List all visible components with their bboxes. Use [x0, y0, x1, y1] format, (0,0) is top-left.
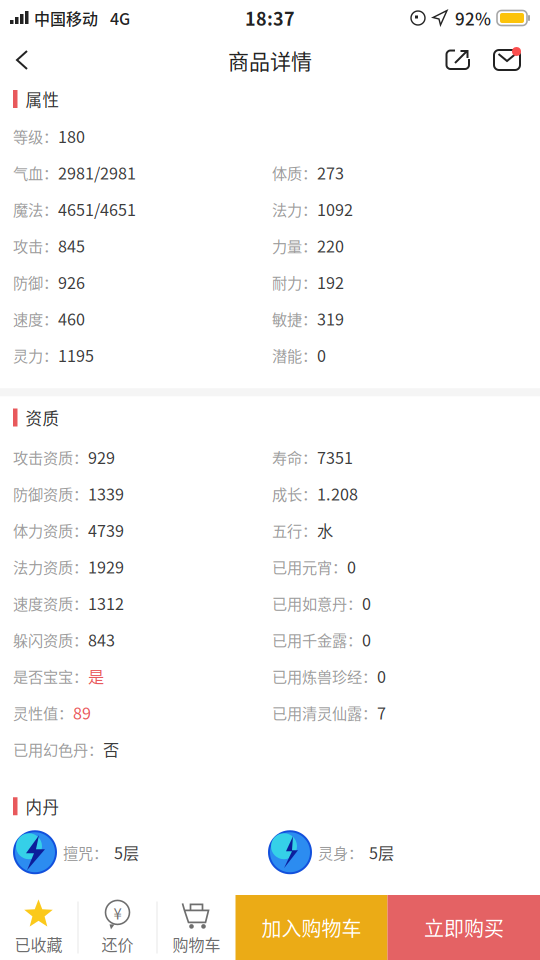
staticText: 体力资质：: [13, 519, 88, 541]
staticText: 寿命：: [272, 446, 317, 468]
staticText: 灵力：: [13, 344, 58, 366]
staticText: 89: [73, 701, 91, 724]
staticText: 845: [58, 234, 85, 257]
staticText: 0: [317, 343, 326, 367]
staticText: 0: [362, 628, 371, 651]
button[interactable]: 消息: [482, 36, 532, 84]
staticText: 2981/2981: [58, 161, 136, 184]
staticText: 攻击资质：: [13, 446, 88, 468]
staticText: 220: [317, 234, 344, 257]
staticText: 防御资质：: [13, 482, 88, 504]
staticText: 商品详情: [228, 45, 312, 75]
staticText: 防御：: [13, 271, 58, 293]
staticText: ¥: [113, 902, 121, 924]
button[interactable]: 分享: [436, 36, 482, 84]
staticText: 擅咒：: [63, 841, 108, 863]
staticText: 0: [362, 591, 371, 615]
staticText: 已用炼兽珍经：: [272, 665, 377, 687]
staticText: 资质: [25, 406, 59, 429]
staticText: 体质：: [272, 161, 317, 183]
staticText: 魔法：: [13, 198, 58, 220]
staticText: 灵身：: [318, 841, 363, 863]
staticText: 0: [377, 664, 386, 688]
staticText: 内丹: [25, 794, 59, 818]
staticText: 5层: [114, 840, 139, 864]
staticText: 已用清灵仙露：: [272, 701, 377, 723]
staticText: 加入购物车: [261, 913, 361, 942]
staticText: 力量：: [272, 234, 317, 256]
staticText: 0: [347, 555, 356, 578]
staticText: 929: [88, 445, 115, 469]
staticText: 是: [88, 664, 104, 688]
staticText: 潜能：: [272, 344, 317, 366]
staticText: 速度资质：: [13, 592, 88, 614]
button[interactable]: 已收藏: [0, 895, 77, 960]
button[interactable]: 返回: [0, 36, 44, 84]
button[interactable]: 立即购买: [387, 895, 540, 960]
staticText: 耐力：: [272, 271, 317, 293]
staticText: 已用千金露：: [272, 628, 362, 650]
staticText: 319: [317, 307, 344, 330]
staticText: 灵性值：: [13, 701, 73, 723]
staticText: 192: [317, 270, 344, 294]
staticText: 926: [58, 270, 85, 294]
staticText: 1092: [317, 197, 353, 221]
staticText: 是否宝宝：: [13, 665, 88, 687]
staticText: 843: [88, 628, 115, 651]
staticText: 180: [58, 124, 85, 148]
staticText: 购物车: [172, 932, 220, 956]
staticText: 法力：: [272, 198, 317, 220]
staticText: 攻击：: [13, 234, 58, 256]
staticText: 五行：: [272, 519, 317, 541]
staticText: 18:37: [245, 5, 295, 31]
staticText: 否: [103, 737, 119, 761]
staticText: 还价: [101, 932, 133, 956]
button[interactable]: ¥: [78, 895, 156, 960]
staticText: 成长：: [272, 482, 317, 504]
staticText: 法力资质：: [13, 555, 88, 577]
staticText: 4739: [88, 518, 124, 542]
staticText: 等级：: [13, 125, 58, 147]
staticText: 躲闪资质：: [13, 628, 88, 650]
staticText: 273: [317, 161, 344, 184]
staticText: 5层: [369, 840, 394, 864]
staticText: 已收藏: [14, 932, 62, 956]
staticText: 4651/4651: [58, 197, 136, 221]
staticText: 92%: [455, 6, 491, 30]
staticText: 4G: [98, 6, 130, 30]
staticText: 已用幻色丹：: [13, 738, 103, 760]
staticText: 气血：: [13, 161, 58, 183]
staticText: 7351: [317, 445, 353, 469]
staticText: 7: [377, 701, 386, 724]
staticText: 1312: [88, 591, 124, 615]
button[interactable]: 购物车: [157, 895, 235, 960]
staticText: 立即购买: [424, 913, 504, 942]
staticText: 中国移动: [30, 6, 98, 30]
staticText: 1.208: [317, 482, 358, 505]
staticText: 1339: [88, 482, 124, 505]
staticText: 水: [317, 518, 333, 542]
staticText: 1929: [88, 555, 124, 578]
staticText: 属性: [25, 87, 59, 111]
button[interactable]: 加入购物车: [235, 895, 387, 960]
staticText: 速度：: [13, 307, 58, 329]
staticText: 1195: [58, 343, 94, 367]
staticText: 敏捷：: [272, 307, 317, 329]
staticText: 460: [58, 307, 85, 330]
staticText: 已用如意丹：: [272, 592, 362, 614]
staticText: 已用元宵：: [272, 555, 347, 577]
